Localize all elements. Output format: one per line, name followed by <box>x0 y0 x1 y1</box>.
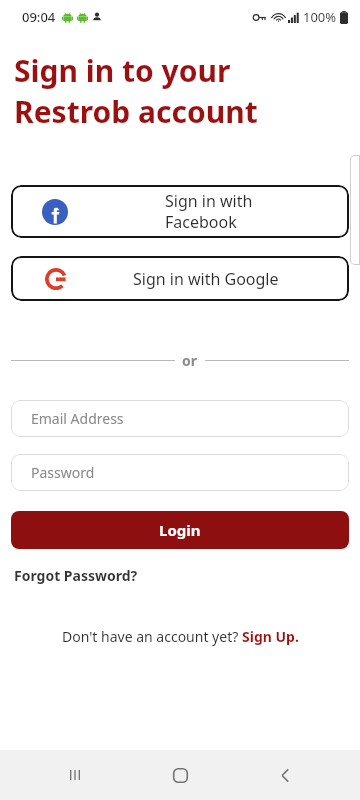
staticText: Forgot Password? <box>14 566 138 585</box>
staticText: 100% <box>303 8 337 26</box>
staticText: 09:04 <box>22 8 56 26</box>
button[interactable]: Home <box>150 750 210 800</box>
staticText: Password <box>31 463 95 482</box>
button[interactable]: Facebook <box>11 185 349 238</box>
other: Google <box>44 267 68 291</box>
other: Facebook <box>42 199 68 225</box>
staticText: Sign in with Google <box>133 268 279 290</box>
button[interactable]: Login <box>11 511 349 549</box>
button[interactable]: Recent apps <box>45 750 105 800</box>
staticText: Email Address <box>31 409 124 428</box>
staticText: Login <box>159 520 201 540</box>
button[interactable]: Sign Up. <box>242 627 299 646</box>
staticText: Sign Up. <box>242 627 299 646</box>
staticText: Sign in with Facebook <box>165 190 253 233</box>
button[interactable]: Back <box>255 750 315 800</box>
button[interactable]: Email Address <box>11 400 349 437</box>
button[interactable]: Password <box>11 454 349 491</box>
staticText: Don't have an account yet? <box>62 627 242 646</box>
button[interactable]: Google <box>11 256 349 301</box>
staticText: Restrob account <box>14 91 258 132</box>
staticText: or <box>182 351 198 370</box>
button[interactable]: Forgot Password? <box>14 566 138 585</box>
staticText: Sign in to your <box>14 50 231 91</box>
